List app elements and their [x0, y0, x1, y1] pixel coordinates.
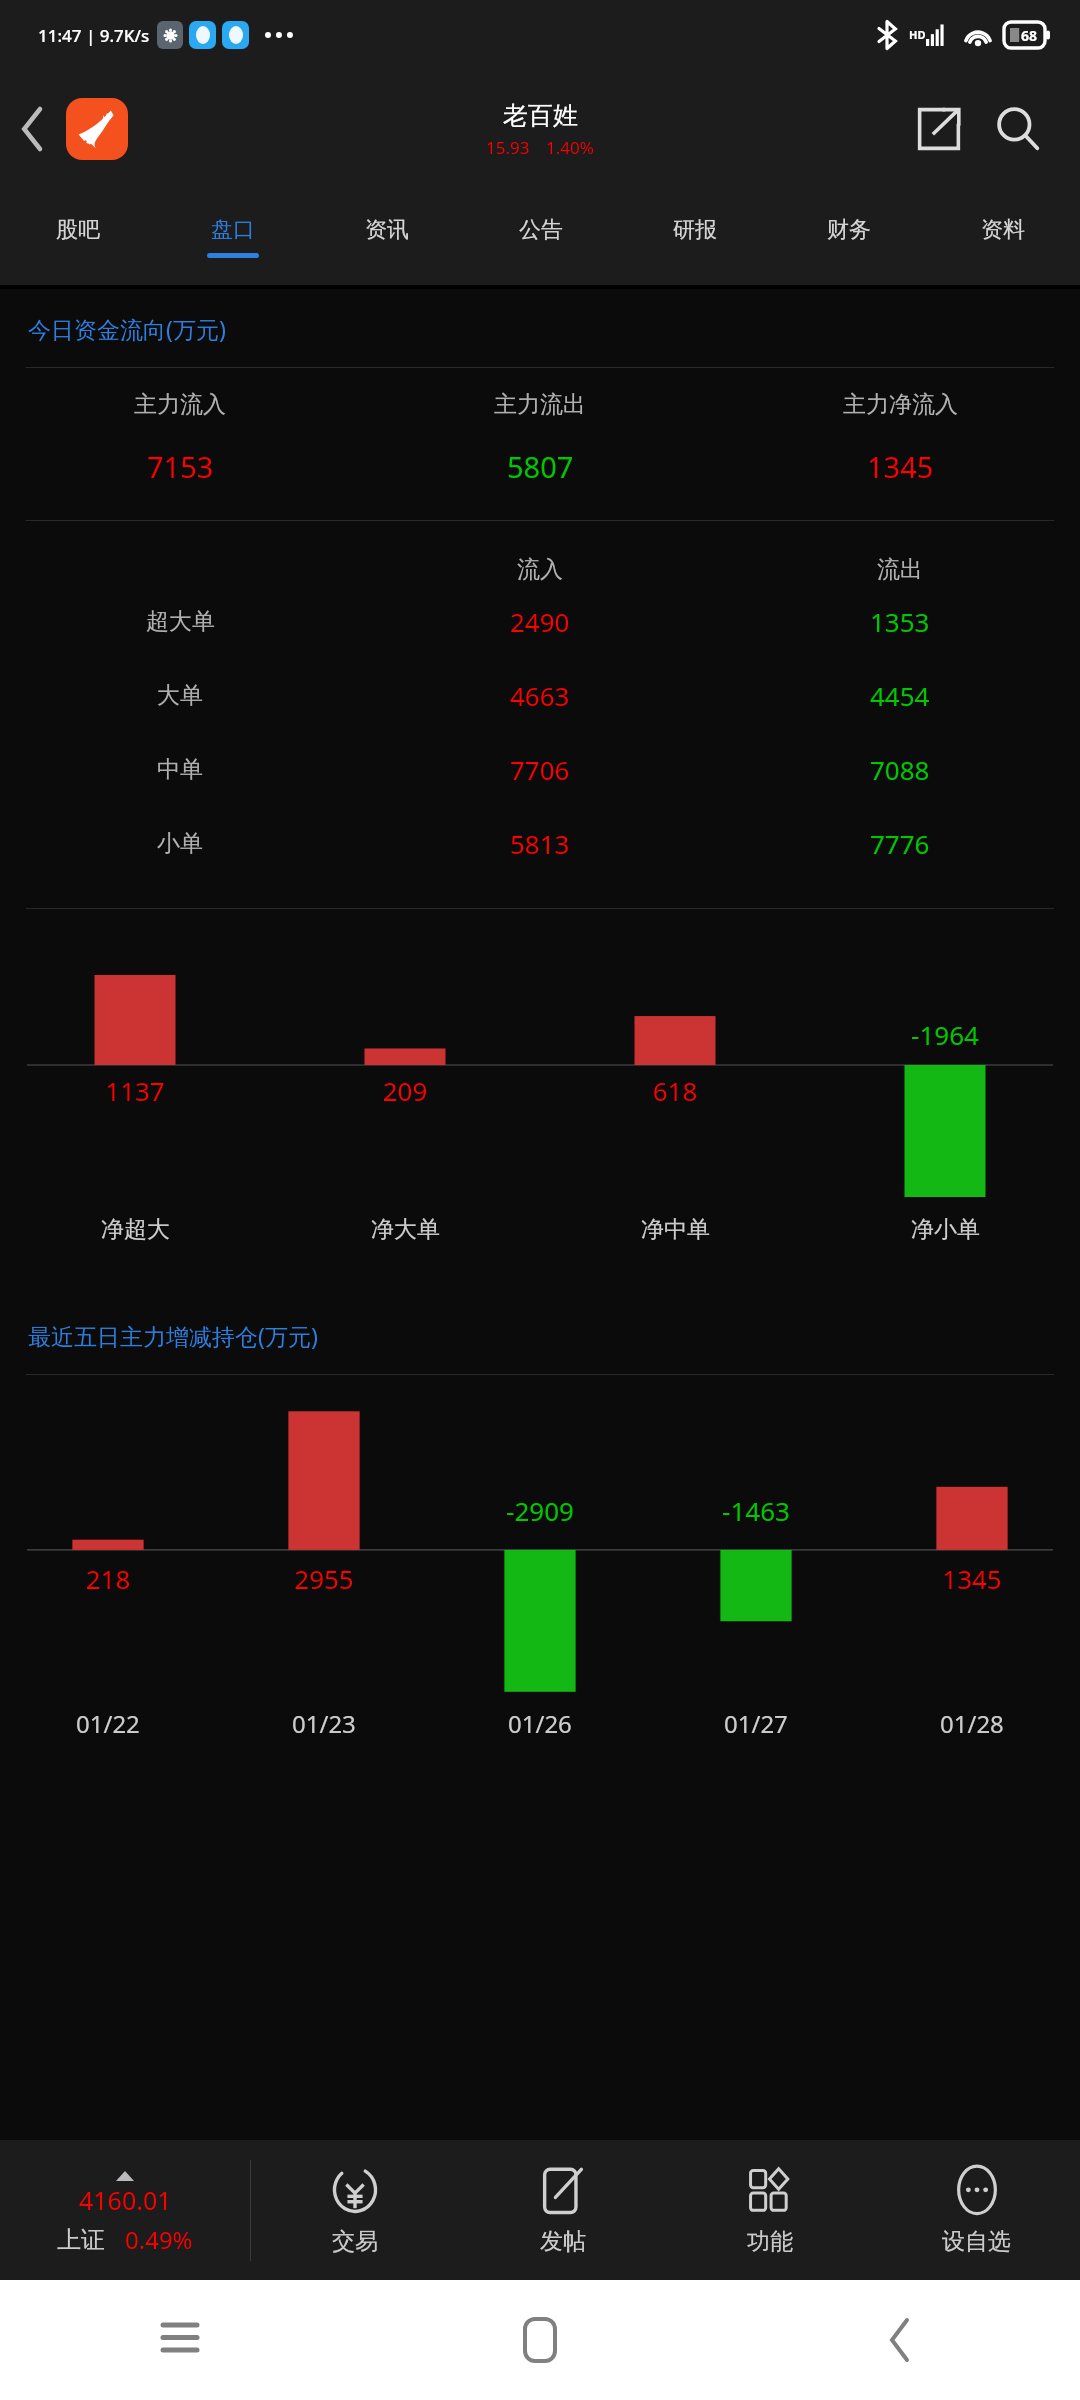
- staticText: 发帖: [540, 2227, 586, 2256]
- button[interactable]: Home: [360, 2280, 720, 2400]
- button[interactable]: 股吧: [0, 188, 155, 285]
- staticText: -1964: [810, 1017, 1080, 1052]
- button[interactable]: Back: [720, 2280, 1080, 2400]
- staticText: 中单: [157, 755, 203, 784]
- staticText: 4160.01: [79, 2183, 172, 2217]
- button[interactable]: Share: [900, 79, 978, 179]
- staticText: 01/23: [292, 1707, 356, 1740]
- staticText: 财务: [827, 216, 871, 244]
- staticText: 股吧: [56, 216, 100, 244]
- button[interactable]: 盘口: [155, 188, 310, 285]
- staticText: 净小单: [911, 1215, 980, 1244]
- button[interactable]: 资料: [926, 188, 1080, 285]
- button[interactable]: 4160.01: [0, 2140, 250, 2280]
- staticText: 主力流出: [494, 390, 586, 419]
- staticText: 今日资金流向(万元): [28, 313, 226, 344]
- staticText: 最近五日主力增减持仓(万元): [28, 1320, 318, 1351]
- staticText: 2490: [510, 604, 570, 639]
- staticText: 交易: [332, 2227, 378, 2256]
- button[interactable]: 财务: [772, 188, 926, 285]
- staticText: 01/22: [76, 1707, 140, 1740]
- button[interactable]: App logo: [66, 98, 128, 160]
- staticText: 01/27: [724, 1707, 788, 1740]
- staticText: 净超大: [101, 1215, 170, 1244]
- staticText: HD: [909, 27, 926, 42]
- staticText: 1.40%: [546, 136, 594, 159]
- staticText: 7776: [870, 826, 930, 861]
- staticText: 上证: [57, 2225, 105, 2255]
- staticText: 2955: [216, 1561, 432, 1596]
- button[interactable]: Recent apps: [0, 2280, 360, 2400]
- staticText: -2909: [432, 1493, 648, 1528]
- staticText: 主力流入: [134, 390, 226, 419]
- staticText: 1353: [870, 604, 930, 639]
- button[interactable]: 研报: [618, 188, 772, 285]
- staticText: 4454: [870, 678, 930, 713]
- staticText: 公告: [519, 216, 563, 244]
- staticText: 盘口: [211, 216, 255, 244]
- staticText: 1137: [0, 1073, 270, 1108]
- staticText: 1345: [864, 1561, 1080, 1596]
- staticText: 设自选: [942, 2227, 1011, 2256]
- staticText: 15.93: [486, 136, 530, 159]
- staticText: 流入: [517, 555, 563, 584]
- button[interactable]: Back: [0, 70, 66, 188]
- staticText: 流出: [877, 555, 923, 584]
- staticText: 7706: [510, 752, 570, 787]
- button[interactable]: 设自选: [873, 2140, 1080, 2280]
- staticText: 7088: [870, 752, 930, 787]
- staticText: 超大单: [146, 607, 215, 636]
- staticText: -1463: [648, 1493, 864, 1528]
- staticText: 7153: [147, 447, 214, 486]
- staticText: 净大单: [371, 1215, 440, 1244]
- staticText: 1345: [867, 447, 934, 486]
- staticText: 0.49%: [125, 2223, 193, 2256]
- staticText: 01/28: [940, 1707, 1004, 1740]
- staticText: 资料: [981, 216, 1025, 244]
- staticText: 功能: [747, 2227, 793, 2256]
- staticText: 小单: [157, 829, 203, 858]
- button[interactable]: 功能: [666, 2140, 873, 2280]
- staticText: 净中单: [641, 1215, 710, 1244]
- staticText: 218: [0, 1561, 216, 1596]
- staticText: 209: [270, 1073, 540, 1108]
- staticText: 5807: [507, 447, 574, 486]
- staticText: 618: [540, 1073, 810, 1108]
- button[interactable]: 公告: [464, 188, 618, 285]
- staticText: 68: [1021, 26, 1038, 45]
- button[interactable]: 资讯: [310, 188, 464, 285]
- staticText: 11:47 | 9.7K/s: [38, 24, 150, 47]
- staticText: 5813: [510, 826, 570, 861]
- staticText: 主力净流入: [843, 390, 958, 419]
- staticText: 老百姓: [503, 100, 578, 131]
- staticText: 4663: [510, 678, 570, 713]
- staticText: 大单: [157, 681, 203, 710]
- button[interactable]: Search: [978, 79, 1058, 179]
- button[interactable]: 发帖: [459, 2140, 666, 2280]
- button[interactable]: 交易: [251, 2140, 459, 2280]
- staticText: 研报: [673, 216, 717, 244]
- staticText: 资讯: [365, 216, 409, 244]
- staticText: 01/26: [508, 1707, 572, 1740]
